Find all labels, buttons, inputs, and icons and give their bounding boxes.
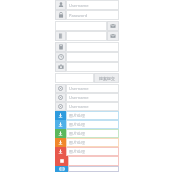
button[interactable]: File [55,42,66,52]
staticText: 图片处理 [69,122,85,127]
staticText: Username [69,3,89,8]
button[interactable]: Download [55,111,66,120]
button[interactable]: Browse [55,166,68,172]
button[interactable] [66,42,119,52]
button[interactable]: Username [66,0,119,10]
button[interactable]: Download [55,147,66,156]
staticText: 图片处理 [69,113,85,118]
button[interactable]: Email [107,21,119,31]
button[interactable]: Send [107,31,119,41]
staticText: Username [69,86,89,91]
button[interactable]: 图片处理 [66,147,119,156]
button[interactable] [68,156,119,166]
button[interactable]: User [55,0,66,10]
staticText: Username [69,95,89,100]
button[interactable]: Username [66,93,119,102]
button[interactable] [66,31,107,41]
button[interactable]: Download [55,129,66,138]
button[interactable] [55,21,107,31]
button[interactable]: Download [55,138,66,147]
button[interactable]: Password [55,10,66,20]
button[interactable]: Download [55,120,66,129]
button[interactable]: 搜索提交 [94,73,119,83]
button[interactable]: Stop [55,156,68,166]
button[interactable]: Settings [55,84,66,93]
button[interactable]: 图片处理 [66,129,119,138]
button[interactable] [66,52,119,62]
button[interactable]: Password [66,10,119,20]
button[interactable]: Time [55,52,66,62]
button[interactable]: Settings [55,93,66,102]
button[interactable] [55,73,94,83]
button[interactable]: Settings [55,102,66,111]
button[interactable] [68,166,119,172]
staticText: Username [69,104,89,109]
button[interactable]: Tag [55,31,66,41]
staticText: 搜索提交 [99,76,115,81]
staticText: Password [69,13,88,18]
button[interactable]: 图片处理 [66,111,119,120]
button[interactable]: Username [66,102,119,111]
button[interactable] [66,62,119,72]
staticText: 图片处理 [69,140,85,145]
button[interactable]: Camera [55,62,66,72]
button[interactable]: 图片处理 [66,120,119,129]
staticText: 图片处理 [69,131,85,136]
button[interactable]: Username [66,84,119,93]
staticText: 图片处理 [69,149,85,154]
button[interactable]: 图片处理 [66,138,119,147]
